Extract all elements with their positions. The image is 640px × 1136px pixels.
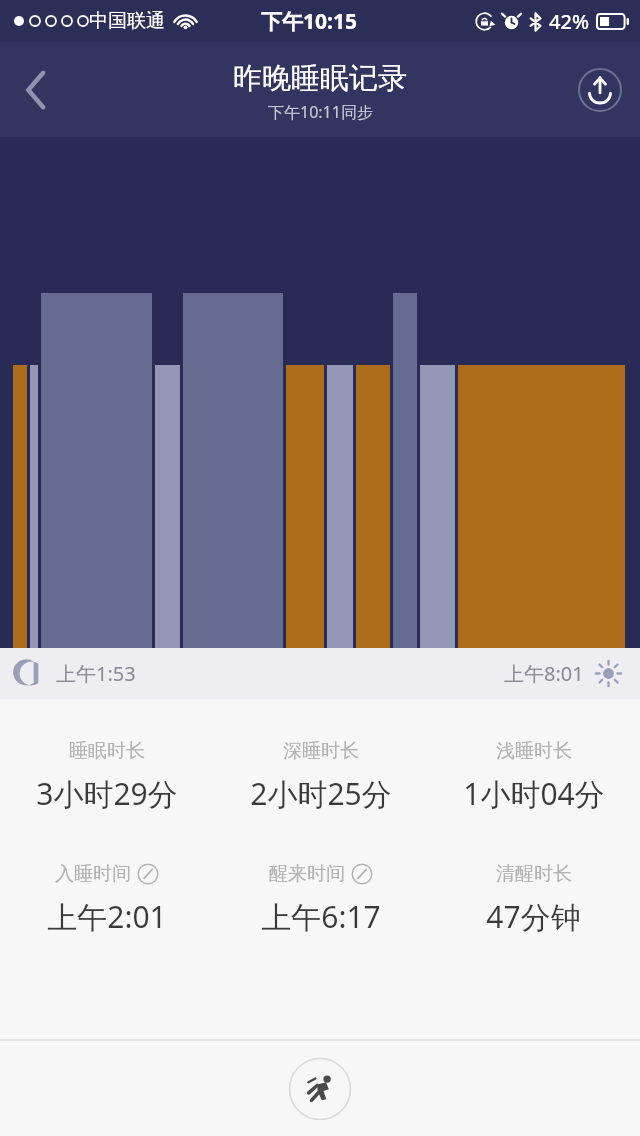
button[interactable]: Activity: [288, 1057, 352, 1121]
staticText: 上午8:01: [504, 660, 584, 687]
staticText: 1小时04分: [463, 773, 605, 814]
button[interactable]: 深睡时长: [214, 739, 427, 814]
staticText: 醒来时间: [269, 862, 345, 886]
staticText: 中国联通: [89, 9, 165, 33]
staticText: 浅睡时长: [496, 739, 572, 763]
staticText: 睡眠时长: [69, 739, 145, 763]
staticText: 上午2:01: [47, 896, 167, 937]
staticText: 3小时29分: [36, 773, 178, 814]
staticText: 入睡时间: [55, 862, 131, 886]
button[interactable]: 清醒时长: [427, 862, 640, 937]
staticText: 47分钟: [486, 896, 581, 937]
staticText: 42%: [549, 8, 589, 35]
button[interactable]: Share: [574, 64, 626, 116]
staticText: 昨晚睡眠记录: [233, 60, 407, 97]
staticText: 下午10:11同步: [268, 101, 373, 123]
staticText: 深睡时长: [283, 739, 359, 763]
button[interactable]: 浅睡时长: [427, 739, 640, 814]
button[interactable]: 睡眠时长: [0, 739, 214, 814]
staticText: 下午10:15: [261, 7, 357, 36]
staticText: 上午1:53: [56, 660, 136, 687]
staticText: 清醒时长: [496, 862, 572, 886]
staticText: 2小时25分: [250, 773, 392, 814]
staticText: 上午6:17: [261, 896, 381, 937]
button[interactable]: Back: [6, 60, 66, 120]
button[interactable]: 入睡时间: [0, 862, 214, 937]
button[interactable]: 醒来时间: [214, 862, 427, 937]
